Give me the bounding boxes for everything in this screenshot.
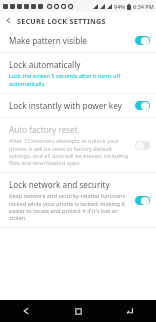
button[interactable]: Toggle on — [135, 101, 150, 110]
staticText: SECURE LOCK SETTINGS — [17, 16, 106, 26]
button[interactable]: Auto factory reset — [0, 118, 156, 172]
staticText: 94% — [114, 3, 125, 10]
button[interactable]: Back — [0, 300, 52, 322]
staticText: Make pattern visible — [9, 35, 87, 46]
button[interactable]: Back — [0, 12, 17, 29]
button[interactable]: Toggle on — [135, 36, 150, 45]
button[interactable]: Recents — [104, 300, 156, 322]
button[interactable]: Home — [52, 300, 104, 322]
button[interactable]: Lock instantly with power key — [0, 94, 156, 117]
button[interactable]: Lock automatically — [0, 53, 156, 93]
staticText: 6:34 PM — [133, 3, 154, 10]
staticText: After 15 incorrect attempts to unlock yo… — [9, 137, 131, 166]
staticText: Auto factory reset — [9, 124, 78, 135]
staticText: Lock automatically — [9, 59, 81, 70]
staticText: Lock the screen 5 seconds after it turns… — [9, 72, 146, 87]
button[interactable]: Lock network and security — [0, 173, 156, 227]
staticText: Lock network and security — [9, 179, 110, 190]
button[interactable]: Toggle on — [135, 196, 150, 205]
staticText: Keep network and security-related functi… — [9, 192, 131, 221]
button[interactable]: Toggle off — [135, 141, 150, 150]
staticText: Lock instantly with power key — [9, 100, 122, 111]
button[interactable]: Make pattern visible — [0, 29, 156, 52]
